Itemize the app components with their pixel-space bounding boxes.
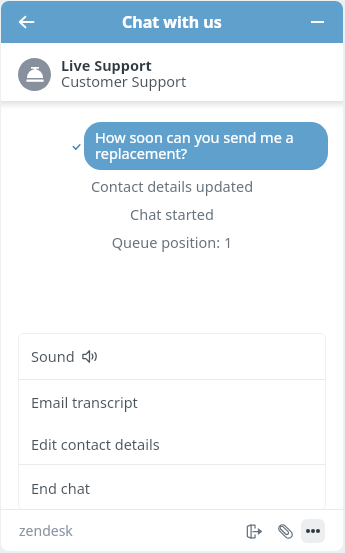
staticText: How soon can you send me a replacement? xyxy=(95,127,317,164)
staticText: zendesk xyxy=(19,521,73,540)
staticText: Live Support xyxy=(61,55,152,75)
staticText: End chat xyxy=(31,478,91,498)
button[interactable]: Email transcript xyxy=(18,380,326,423)
button[interactable]: Edit contact details xyxy=(18,423,326,464)
staticText: Queue position: 1 xyxy=(1,232,343,252)
staticText: Sound xyxy=(31,346,75,366)
button[interactable]: Minimize xyxy=(305,7,335,37)
staticText: Customer Support xyxy=(61,71,187,91)
button[interactable]: Attach file xyxy=(272,518,298,544)
staticText: Email transcript xyxy=(31,392,138,412)
staticText: Contact details updated xyxy=(1,176,343,196)
button[interactable]: Sound xyxy=(18,333,326,379)
button[interactable]: End chat xyxy=(241,518,267,544)
staticText: Chat with us xyxy=(122,11,222,33)
button[interactable]: Back xyxy=(9,7,39,37)
button[interactable]: End chat xyxy=(18,465,326,510)
staticText: Chat started xyxy=(1,204,343,224)
staticText: Edit contact details xyxy=(31,434,160,454)
button[interactable]: More options xyxy=(301,519,325,543)
